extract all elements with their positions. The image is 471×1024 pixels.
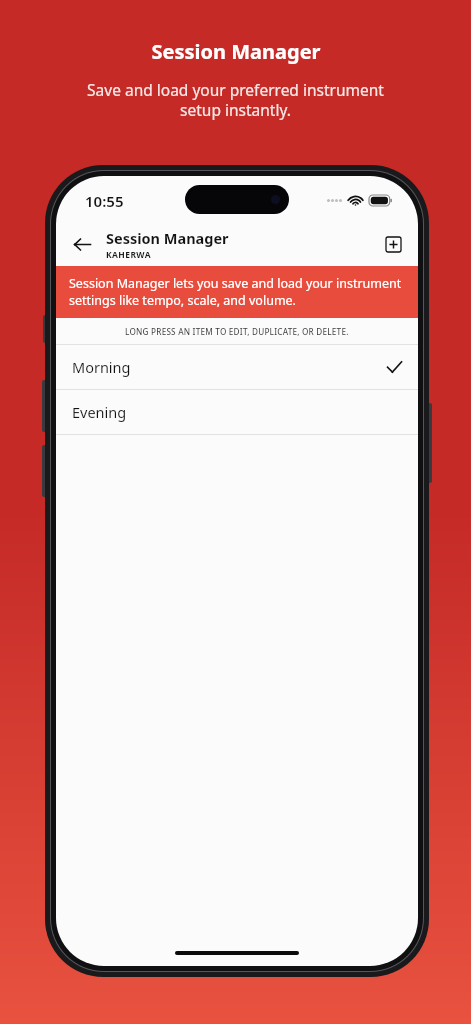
staticText: LONG PRESS AN ITEM TO EDIT, DUPLICATE, O…	[125, 326, 349, 337]
staticText: Morning	[72, 357, 131, 377]
staticText: Session Manager	[151, 38, 321, 65]
staticText: Evening	[72, 402, 127, 422]
staticText: Session Manager	[106, 228, 229, 248]
staticText: 10:55	[85, 191, 124, 211]
button[interactable]: Morning	[56, 345, 418, 389]
button[interactable]: Back	[64, 226, 100, 262]
staticText: Save and load your preferred instrument …	[87, 79, 384, 120]
button[interactable]: Evening	[56, 390, 418, 434]
staticText: Session Manager lets you save and load y…	[69, 275, 405, 309]
staticText: KAHERWA	[106, 249, 151, 261]
button[interactable]: Add session	[378, 229, 408, 259]
